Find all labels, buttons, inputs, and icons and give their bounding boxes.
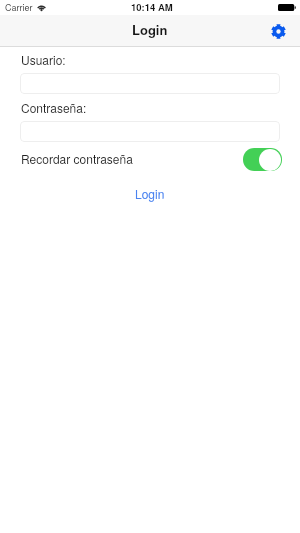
staticText: Usuario: [21, 51, 66, 68]
staticText: Contraseña: [21, 99, 87, 116]
button[interactable]: Settings [267, 20, 289, 42]
staticText: 10:14 AM [131, 0, 173, 14]
button[interactable]: Recordar contrasena [243, 148, 282, 171]
button[interactable]: Login [119, 181, 181, 206]
button[interactable]: Contrasena [20, 121, 280, 142]
staticText: Carrier [5, 1, 33, 14]
staticText: Login [132, 20, 168, 39]
button[interactable]: Usuario [20, 73, 280, 94]
staticText: Recordar contraseña [21, 150, 133, 167]
